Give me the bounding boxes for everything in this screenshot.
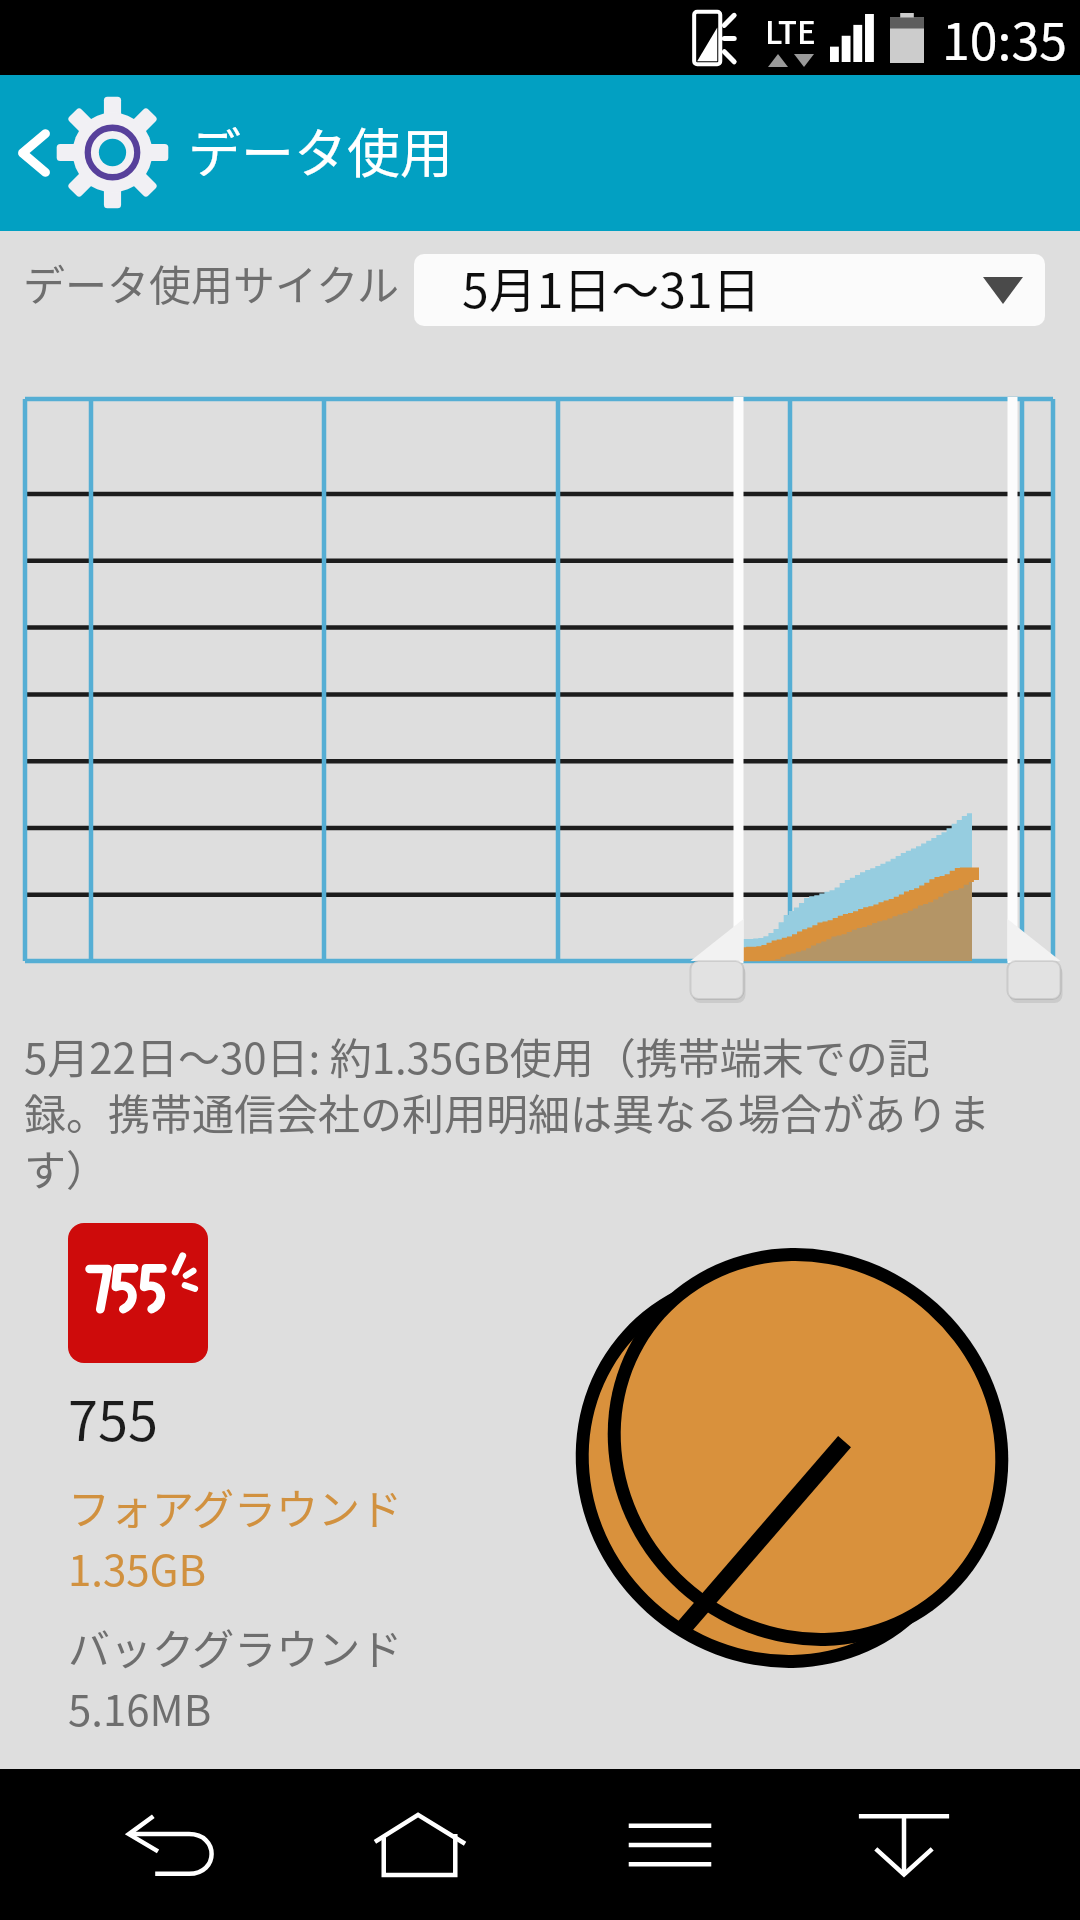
- staticText: 5月22日〜30日: 約1.35GB使用（携帯端末での記録。携帯通信会社の利用明…: [24, 1025, 996, 1198]
- staticText: 10:35: [942, 2, 1067, 74]
- button[interactable]: Home: [300, 1769, 540, 1920]
- staticText: 755: [68, 1378, 158, 1456]
- staticText: バックグラウンド 5.16MB: [68, 1616, 403, 1738]
- staticText: 5月1日〜31日: [462, 254, 761, 322]
- staticText: LTE: [765, 8, 816, 53]
- button[interactable]: 755: [60, 1215, 480, 1745]
- staticText: フォアグラウンド 1.35GB: [68, 1476, 402, 1598]
- button[interactable]: Back: [0, 75, 68, 231]
- button[interactable]: Menu: [550, 1769, 790, 1920]
- staticText: データ使用: [188, 112, 453, 189]
- button[interactable]: 5月1日〜31日: [414, 254, 1045, 326]
- button[interactable]: Back: [54, 1769, 294, 1920]
- button[interactable]: Notifications: [784, 1769, 1024, 1920]
- staticText: データ使用サイクル: [23, 252, 399, 313]
